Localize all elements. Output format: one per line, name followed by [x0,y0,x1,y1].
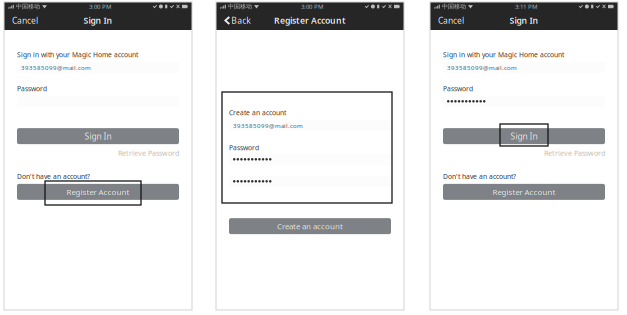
button[interactable]: Register Account [17,184,179,200]
staticText: Register Account [492,186,555,197]
button[interactable]: Create an account [229,218,391,234]
staticText: Password [17,84,47,93]
staticText: Password [443,84,473,93]
staticText: 3:00 PM [301,2,323,11]
staticText: 中国移动 [16,3,40,10]
button[interactable]: Sign In [17,128,179,144]
staticText: Retrieve Password [118,148,179,158]
staticText: Back [231,15,251,26]
staticText: Register Account [274,15,346,26]
staticText: 3:00 PM [89,2,111,11]
staticText: Sign In [510,130,537,142]
staticText: Register Account [66,186,129,197]
staticText: 中国移动 [228,3,252,10]
staticText: 393585099@mail.com [21,63,91,72]
staticText: Create an account [277,221,343,231]
button[interactable]: Sign In [443,128,605,144]
staticText: 3:11 PM [515,2,537,11]
button[interactable]: Cancel [430,11,472,30]
staticText: Password [229,143,259,152]
staticText: Sign in with your Magic Home account [17,50,138,59]
staticText: 393585099@mail.com [233,121,303,130]
staticText: Create an account [229,108,286,117]
staticText: Cancel [438,15,464,26]
button[interactable]: Retrieve Password [544,148,605,158]
staticText: Don't have an account? [17,172,90,181]
button[interactable]: Back [216,11,259,30]
staticText: Sign In [84,130,111,142]
staticText: 393585099@mail.com [447,63,517,72]
staticText: Sign In [83,15,112,26]
staticText: Don't have an account? [443,172,516,181]
button[interactable]: Cancel [4,11,46,30]
staticText: Cancel [12,15,38,26]
staticText: Sign in with your Magic Home account [443,50,564,59]
button[interactable]: Retrieve Password [118,148,179,158]
staticText: Retrieve Password [544,148,605,158]
staticText: Sign In [509,15,538,26]
button[interactable]: Register Account [443,184,605,200]
staticText: 中国移动 [442,3,466,10]
